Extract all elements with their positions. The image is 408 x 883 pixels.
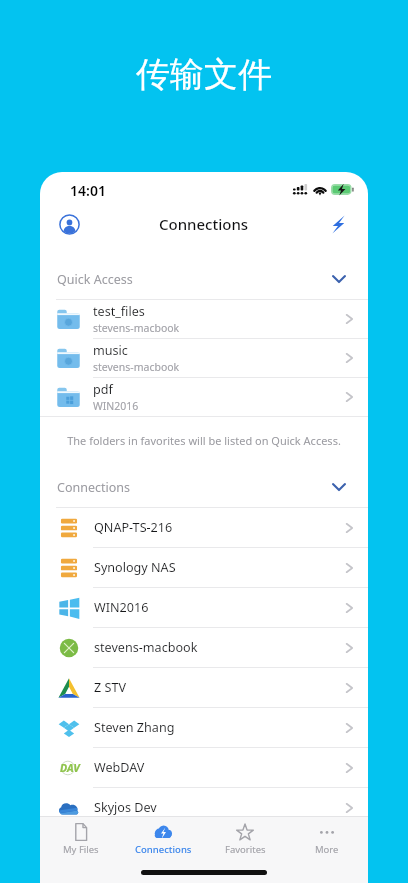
staticText: Connections [159,214,249,234]
staticText: pdf [93,381,113,398]
button[interactable]: pdf [40,378,368,416]
staticText: Connections [135,843,192,856]
staticText: DAV [60,761,80,775]
button[interactable]: stevens-macbook [40,628,368,667]
staticText: Z STV [94,679,345,696]
button[interactable]: More [286,822,368,856]
staticText: QNAP-TS-216 [94,519,345,536]
button[interactable]: QNAP-TS-216 [40,508,368,547]
button[interactable]: Favorites [204,822,286,856]
button[interactable]: DAV [40,748,368,787]
staticText: WIN2016 [94,599,345,616]
staticText: test_files [93,303,145,320]
staticText: stevens-macbook [93,321,180,335]
staticText: My Files [63,843,99,856]
button[interactable]: Quick connect [322,208,354,240]
button[interactable]: WIN2016 [40,588,368,627]
staticText: stevens-macbook [93,360,180,374]
staticText: Connections [57,479,130,496]
button[interactable]: Skyjos Dev [40,788,368,827]
staticText: WebDAV [94,759,345,776]
button[interactable]: Steven Zhang [40,708,368,747]
staticText: WIN2016 [93,399,139,413]
staticText: Quick Access [57,271,133,288]
staticText: Google Drive [94,839,345,856]
button[interactable]: Google Drive [40,828,368,867]
button[interactable]: Account [53,208,85,240]
staticText: 传输文件 [136,53,272,96]
staticText: music [93,342,128,359]
button[interactable]: My Files [40,822,122,856]
button[interactable]: Synology NAS [40,548,368,587]
button[interactable]: Connections [40,464,368,507]
button[interactable]: Connections [122,822,204,856]
button[interactable]: Quick Access [40,241,368,299]
button[interactable]: Z STV [40,668,368,707]
staticText: 14:01 [70,181,106,200]
staticText: stevens-macbook [94,639,345,656]
staticText: More [315,843,339,856]
staticText: Synology NAS [94,559,345,576]
staticText: Favorites [225,843,266,856]
staticText: Steven Zhang [94,719,345,736]
staticText: Skyjos Dev [94,799,345,816]
button[interactable]: test_files [40,300,368,338]
staticText: The folders in favorites will be listed … [67,433,341,448]
button[interactable]: music [40,339,368,377]
